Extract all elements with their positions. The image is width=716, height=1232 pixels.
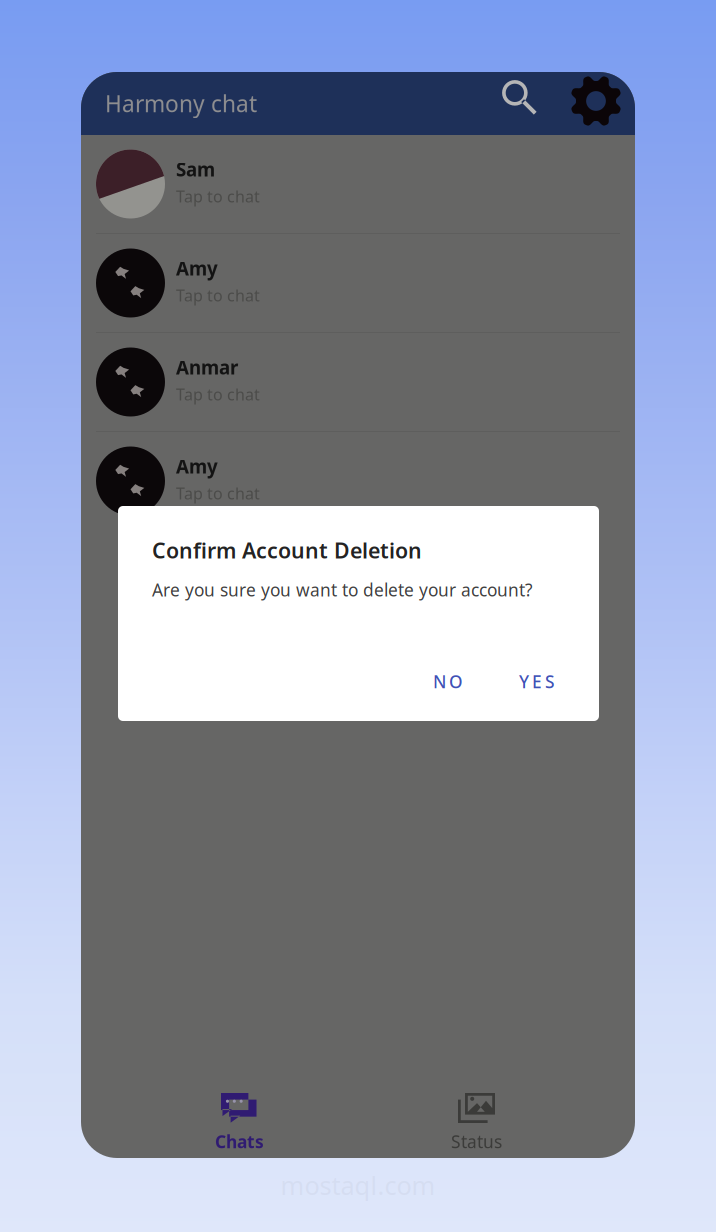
button[interactable]: N O <box>413 659 483 704</box>
staticText: Tap to chat <box>176 186 260 207</box>
staticText: Tap to chat <box>176 285 260 306</box>
staticText: Chats <box>215 1130 264 1153</box>
staticText: Anmar <box>176 355 238 380</box>
staticText: Tap to chat <box>176 384 260 405</box>
staticText: Confirm Account Deletion <box>152 536 422 564</box>
button[interactable]: Chats <box>121 1085 358 1160</box>
button[interactable]: Search <box>489 72 570 135</box>
staticText: Tap to chat <box>176 483 260 504</box>
staticText: Y E S <box>519 670 555 693</box>
staticText: Amy <box>176 256 218 281</box>
staticText: Sam <box>176 157 215 182</box>
button[interactable]: Amy <box>81 432 635 530</box>
staticText: Are you sure you want to delete your acc… <box>152 578 533 601</box>
staticText: Amy <box>176 454 218 479</box>
staticText: Status <box>451 1130 502 1153</box>
button[interactable]: Settings <box>570 72 635 135</box>
staticText: N O <box>433 670 463 693</box>
button[interactable]: Sam <box>81 135 635 233</box>
button[interactable]: Amy <box>81 234 635 332</box>
button[interactable]: Anmar <box>81 333 635 431</box>
staticText: Harmony chat <box>105 88 257 118</box>
button[interactable]: Status <box>358 1085 595 1160</box>
button[interactable]: Y E S <box>499 659 575 704</box>
